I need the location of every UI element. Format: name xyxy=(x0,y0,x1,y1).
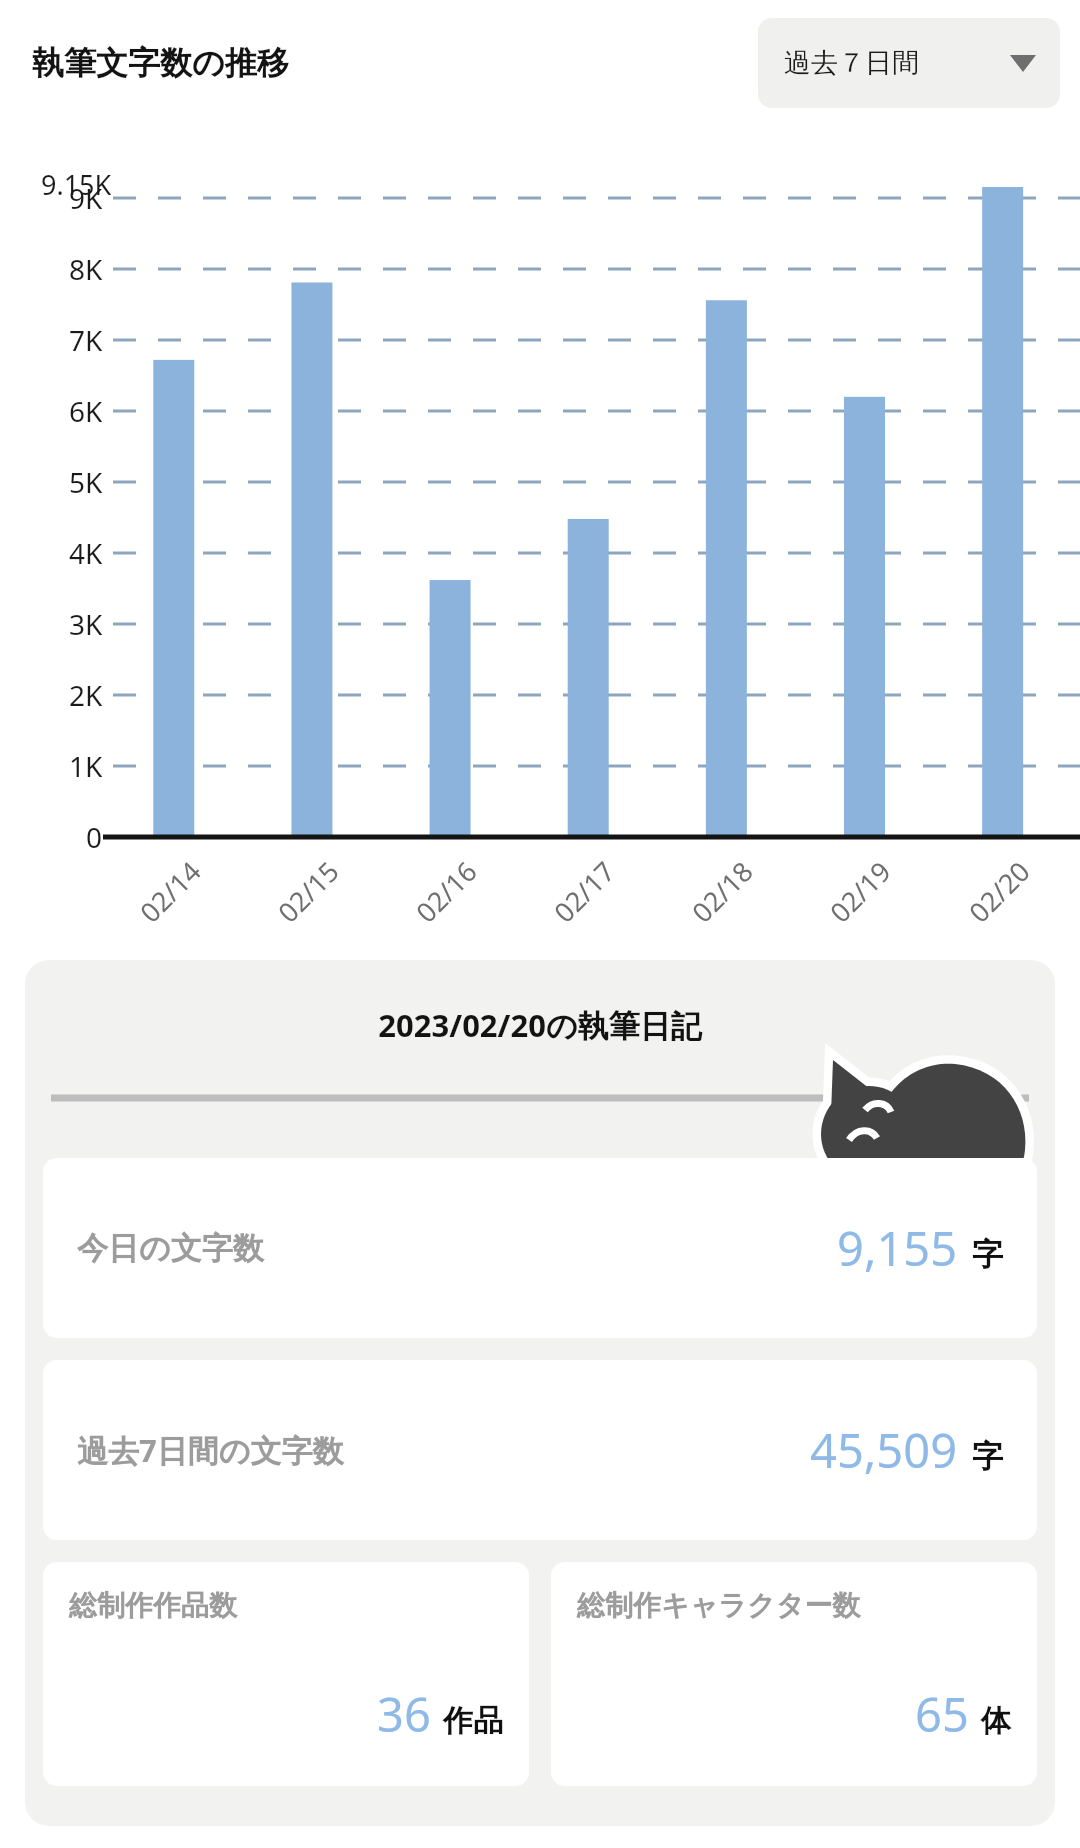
staticText: 02/14 xyxy=(131,853,209,930)
staticText: 65 xyxy=(915,1682,969,1746)
staticText: 総制作作品数 xyxy=(69,1588,237,1623)
staticText: 8K xyxy=(69,250,103,288)
staticText: 執筆文字数の推移 xyxy=(32,43,289,83)
staticText: 2K xyxy=(69,676,103,714)
staticText: 02/15 xyxy=(269,853,347,930)
staticText: 36 xyxy=(377,1682,431,1746)
staticText: 作品 xyxy=(443,1702,503,1740)
button[interactable]: 総制作キャラクター数 xyxy=(551,1562,1037,1786)
staticText: 02/17 xyxy=(545,853,623,930)
staticText: 体 xyxy=(981,1702,1011,1740)
staticText: 45,509 xyxy=(810,1418,958,1482)
staticText: 字 xyxy=(972,1437,1003,1476)
staticText: 過去７日間 xyxy=(784,46,919,80)
staticText: 1K xyxy=(69,747,103,785)
staticText: 4K xyxy=(69,534,103,572)
staticText: 9.15K xyxy=(41,166,112,202)
staticText: 7K xyxy=(69,321,103,359)
staticText: 0 xyxy=(86,818,103,856)
button[interactable]: 総制作作品数 xyxy=(43,1562,529,1786)
staticText: 3K xyxy=(69,605,103,643)
staticText: 02/19 xyxy=(821,853,899,930)
staticText: 5K xyxy=(69,463,103,501)
staticText: 2023/02/20の執筆日記 xyxy=(25,1004,1055,1046)
staticText: 6K xyxy=(69,392,103,430)
staticText: 字 xyxy=(972,1235,1003,1274)
staticText: 02/20 xyxy=(960,853,1038,930)
button[interactable]: 過去7日間の文字数 xyxy=(43,1360,1037,1540)
button[interactable]: 今日の文字数 xyxy=(43,1158,1037,1338)
staticText: 今日の文字数 xyxy=(77,1229,264,1268)
staticText: 総制作キャラクター数 xyxy=(577,1588,861,1623)
staticText: 9K xyxy=(69,179,103,217)
staticText: 02/18 xyxy=(683,853,761,930)
staticText: 02/16 xyxy=(407,853,485,930)
staticText: 過去7日間の文字数 xyxy=(77,1429,344,1471)
button[interactable]: Select period xyxy=(758,18,1060,108)
staticText: 9,155 xyxy=(837,1216,958,1280)
